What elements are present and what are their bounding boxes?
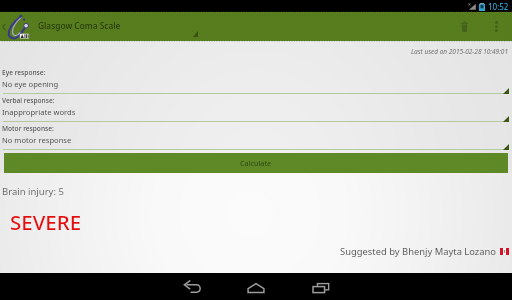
staticText: 10:52 (488, 1, 509, 12)
button[interactable]: Calculate (4, 153, 508, 173)
button[interactable]: Delete (440, 12, 488, 41)
staticText: No eye opening (2, 79, 59, 89)
staticText: Motor response: (2, 124, 54, 133)
button[interactable]: Back (160, 273, 224, 300)
staticText: Calculate (240, 158, 272, 168)
staticText: Glasgow Coma Scale (38, 20, 121, 31)
staticText: Brain injury: 5 (2, 185, 64, 198)
button[interactable]: Navigate up (0, 14, 30, 40)
staticText: Inappropriate words (2, 107, 76, 117)
staticText: Verbal response: (2, 96, 55, 105)
staticText: Eye response: (2, 68, 46, 77)
staticText: No motor response (2, 135, 72, 145)
button[interactable]: Recent apps (288, 273, 352, 300)
button[interactable]: Verbal response: (0, 93, 512, 121)
staticText: Last used on 2015-02-28 10:49:01 (0, 47, 508, 56)
button[interactable]: More options (488, 12, 504, 41)
button[interactable]: Motor response: (0, 121, 512, 149)
staticText: Suggested by Bhenjy Mayta Lozano (340, 245, 497, 258)
button[interactable]: Eye response: (0, 65, 512, 93)
button[interactable]: Home (224, 273, 288, 300)
staticText: SEVERE (10, 208, 82, 236)
